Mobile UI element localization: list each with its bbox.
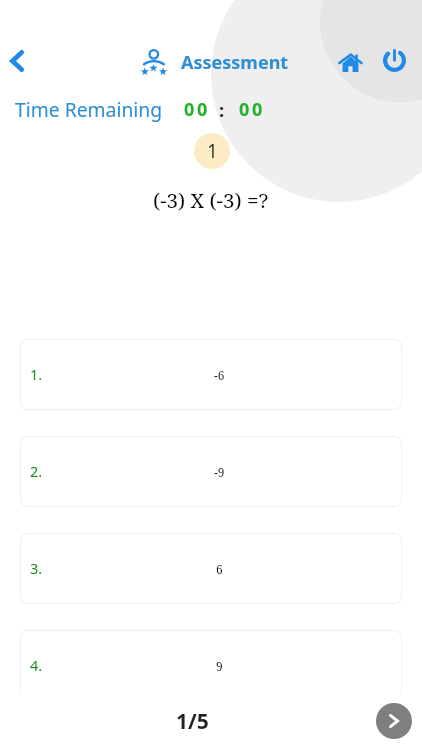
staticText: 00 (184, 97, 210, 122)
button[interactable]: 3. (20, 533, 402, 604)
staticText: 4. (30, 655, 43, 675)
button[interactable]: 2. (20, 436, 402, 507)
staticText: 2. (30, 461, 43, 481)
staticText: Time Remaining (15, 96, 163, 122)
staticText: Assessment (181, 50, 289, 75)
button[interactable]: 1. (20, 339, 402, 410)
staticText: 1 (207, 138, 218, 164)
button[interactable]: Home (330, 42, 370, 82)
button[interactable]: Power (374, 41, 414, 81)
staticText: -6 (214, 367, 225, 383)
staticText: 00 (239, 97, 265, 122)
staticText: : (219, 97, 225, 122)
button[interactable]: 4. (20, 630, 402, 701)
staticText: (-3) X (-3) =? (153, 186, 269, 214)
staticText: 3. (30, 558, 43, 578)
button[interactable]: Back (0, 41, 37, 81)
staticText: 1. (30, 364, 43, 384)
staticText: 9 (216, 658, 223, 674)
staticText: -9 (214, 464, 225, 480)
button[interactable]: Next question (376, 703, 412, 739)
staticText: 6 (216, 561, 223, 577)
staticText: 1/5 (176, 707, 209, 736)
